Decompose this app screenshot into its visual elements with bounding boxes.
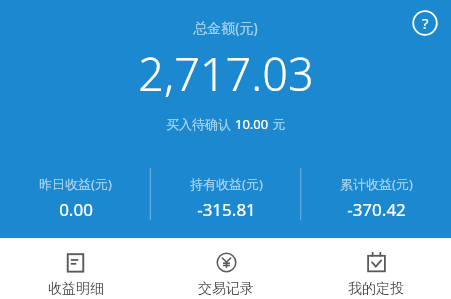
button[interactable]: 昨日收益(元) [0,166,151,221]
button[interactable]: 收益明细 [0,238,151,299]
button[interactable]: 累计收益(元) [301,166,451,221]
staticText: ? [422,13,429,33]
staticText: 10.00 [235,115,269,133]
staticText: 买入待确认 [166,115,235,133]
staticText: 元 [269,115,286,133]
button[interactable]: 我的定投 [301,238,451,299]
staticText: 交易记录 [198,280,254,298]
button[interactable]: 交易记录 [151,238,301,299]
staticText: 持有收益(元) [190,175,263,193]
button[interactable]: Help [410,8,440,38]
staticText: -370.42 [347,198,406,221]
staticText: 总金额(元) [193,18,258,37]
staticText: 0.00 [59,198,93,221]
staticText: 我的定投 [348,280,404,298]
staticText: -315.81 [197,198,256,221]
button[interactable]: 持有收益(元) [151,166,301,221]
staticText: 收益明细 [48,280,104,298]
staticText: 累计收益(元) [340,175,413,193]
staticText: 2,717.03 [138,43,314,104]
staticText: 昨日收益(元) [39,175,112,193]
